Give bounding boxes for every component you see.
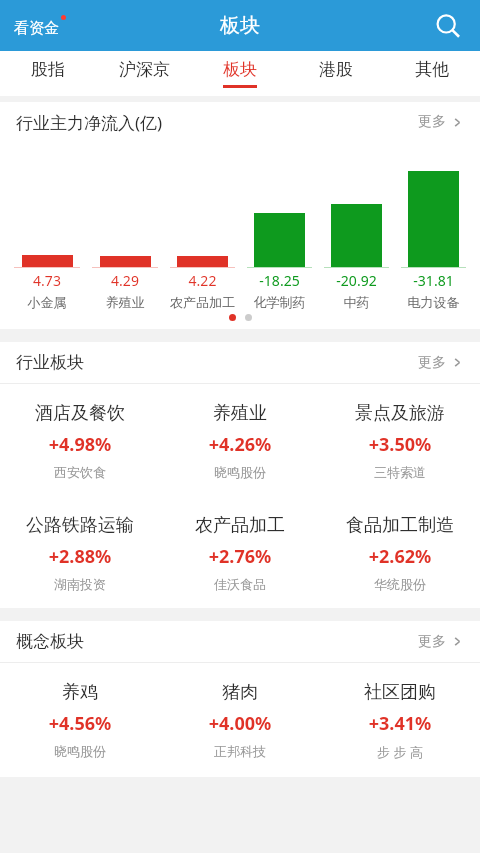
staticText: 4.29 xyxy=(86,271,164,290)
staticText: -31.81 xyxy=(395,271,472,290)
staticText: 晓鸣股份 xyxy=(160,464,320,480)
staticText: 板块 xyxy=(220,13,260,38)
staticText: +4.00% xyxy=(160,711,320,736)
staticText: 养鸡 xyxy=(0,681,160,704)
button[interactable]: 景点及旅游 xyxy=(320,402,480,480)
button[interactable]: -18.25 xyxy=(241,171,318,310)
button[interactable]: 行业主力净流入(亿) xyxy=(0,102,480,142)
staticText: 食品加工制造 xyxy=(320,514,480,537)
button[interactable]: 农产品加工 xyxy=(160,514,320,592)
staticText: 更多 xyxy=(418,633,446,651)
button[interactable]: 4.73 xyxy=(8,171,86,310)
button[interactable]: 酒店及餐饮 xyxy=(0,402,160,480)
button[interactable]: -20.92 xyxy=(318,171,395,310)
staticText: 更多 xyxy=(418,354,446,372)
button[interactable]: 食品加工制造 xyxy=(320,514,480,592)
staticText: 公路铁路运输 xyxy=(0,514,160,537)
staticText: 板块 xyxy=(223,59,257,80)
staticText: 步 步 高 xyxy=(320,743,480,761)
staticText: 农产品加工 xyxy=(164,294,241,310)
staticText: 股指 xyxy=(31,59,65,80)
button[interactable]: 社区团购 xyxy=(320,681,480,761)
button[interactable]: -31.81 xyxy=(395,171,472,310)
staticText: 4.73 xyxy=(8,271,86,290)
staticText: +3.41% xyxy=(320,711,480,736)
button[interactable]: Search xyxy=(426,4,470,48)
staticText: -20.92 xyxy=(318,271,395,290)
staticText: 沪深京 xyxy=(119,59,170,80)
staticText: 三特索道 xyxy=(320,464,480,480)
staticText: 其他 xyxy=(415,59,449,80)
staticText: 行业主力净流入(亿) xyxy=(16,111,163,134)
staticText: 华统股份 xyxy=(320,576,480,592)
staticText: +2.62% xyxy=(320,544,480,569)
button[interactable]: 概念板块 xyxy=(0,621,480,662)
button[interactable]: 板块 xyxy=(192,51,288,96)
staticText: 社区团购 xyxy=(320,681,480,704)
staticText: 酒店及餐饮 xyxy=(0,402,160,425)
button[interactable]: 沪深京 xyxy=(96,51,192,96)
staticText: 化学制药 xyxy=(241,294,318,310)
staticText: 湖南投资 xyxy=(0,576,160,592)
staticText: 概念板块 xyxy=(16,631,84,652)
staticText: 佳沃食品 xyxy=(160,576,320,592)
staticText: 看资金 xyxy=(14,19,59,38)
button[interactable]: 公路铁路运输 xyxy=(0,514,160,592)
staticText: 猪肉 xyxy=(160,681,320,704)
button[interactable]: 养鸡 xyxy=(0,681,160,759)
button[interactable]: 其他 xyxy=(384,51,480,96)
staticText: 养殖业 xyxy=(160,402,320,425)
button[interactable]: 4.22 xyxy=(164,171,241,310)
staticText: 小金属 xyxy=(8,294,86,310)
staticText: 农产品加工 xyxy=(160,514,320,537)
staticText: +4.56% xyxy=(0,711,160,736)
staticText: +2.88% xyxy=(0,544,160,569)
staticText: +3.50% xyxy=(320,432,480,457)
button[interactable]: 4.29 xyxy=(86,171,164,310)
staticText: 行业板块 xyxy=(16,352,84,373)
button[interactable]: 股指 xyxy=(0,51,96,96)
staticText: 电力设备 xyxy=(395,294,472,310)
staticText: 港股 xyxy=(319,59,353,80)
staticText: 养殖业 xyxy=(86,294,164,310)
staticText: +2.76% xyxy=(160,544,320,569)
button[interactable]: 养殖业 xyxy=(160,402,320,480)
staticText: 更多 xyxy=(418,113,446,131)
button[interactable]: 猪肉 xyxy=(160,681,320,759)
button[interactable]: 港股 xyxy=(288,51,384,96)
staticText: 4.22 xyxy=(164,271,241,290)
staticText: 中药 xyxy=(318,294,395,310)
staticText: +4.26% xyxy=(160,432,320,457)
staticText: 景点及旅游 xyxy=(320,402,480,425)
staticText: 晓鸣股份 xyxy=(0,743,160,759)
button[interactable]: 看资金 xyxy=(14,13,66,38)
button[interactable]: 行业板块 xyxy=(0,342,480,383)
staticText: +4.98% xyxy=(0,432,160,457)
staticText: 正邦科技 xyxy=(160,743,320,759)
staticText: 西安饮食 xyxy=(0,464,160,480)
staticText: -18.25 xyxy=(241,271,318,290)
